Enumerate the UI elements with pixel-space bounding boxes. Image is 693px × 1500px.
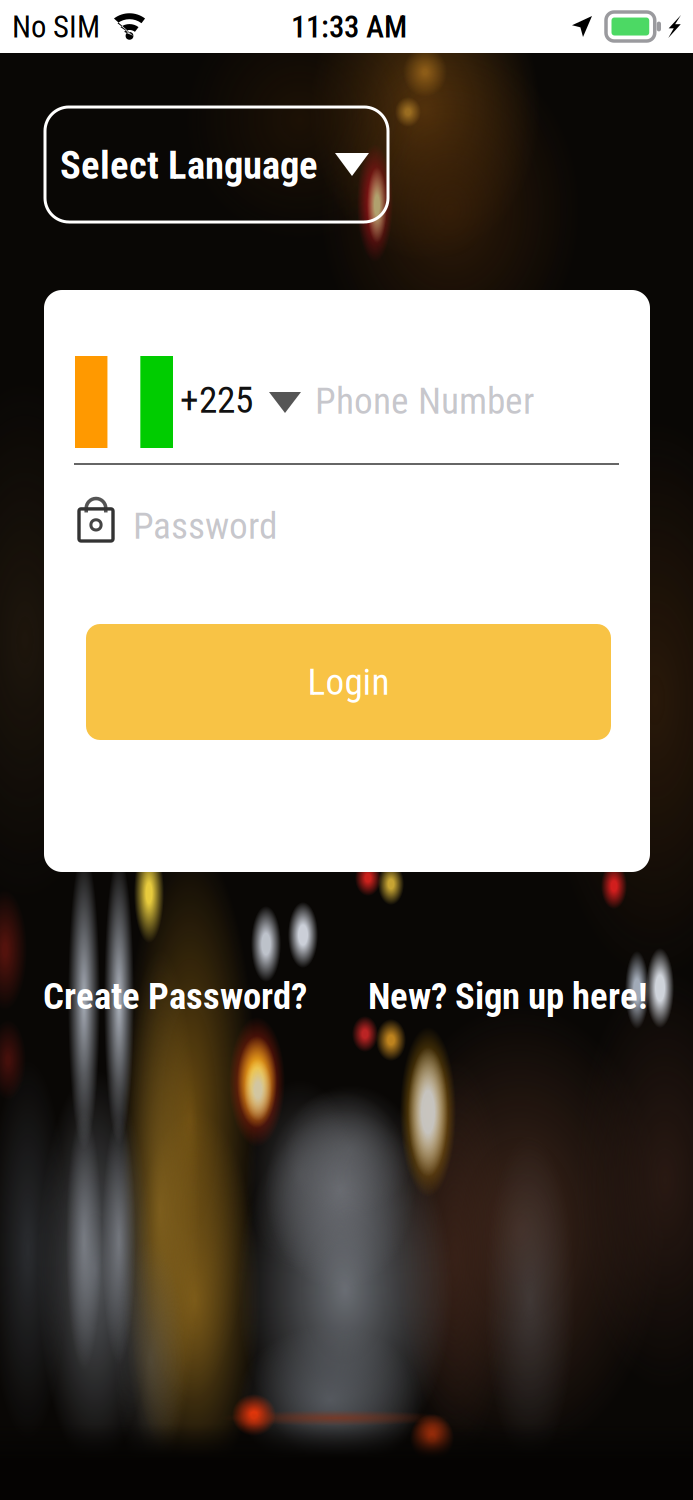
staticText: New? Sign up here! (368, 975, 648, 1018)
staticText: Login (307, 660, 389, 704)
staticText: Phone Number (315, 379, 534, 423)
staticText: +225 (180, 378, 253, 422)
staticText: 11:33 AM (291, 9, 407, 45)
button[interactable]: New? Sign up here! (368, 975, 648, 1018)
staticText: Select Language (60, 143, 318, 188)
button[interactable]: Create Password? (43, 975, 307, 1018)
button[interactable]: Select Language (45, 107, 388, 222)
staticText: No SIM (12, 9, 100, 45)
button[interactable]: Login (86, 624, 611, 740)
staticText: Create Password? (43, 975, 307, 1018)
staticText: Password (133, 504, 278, 548)
